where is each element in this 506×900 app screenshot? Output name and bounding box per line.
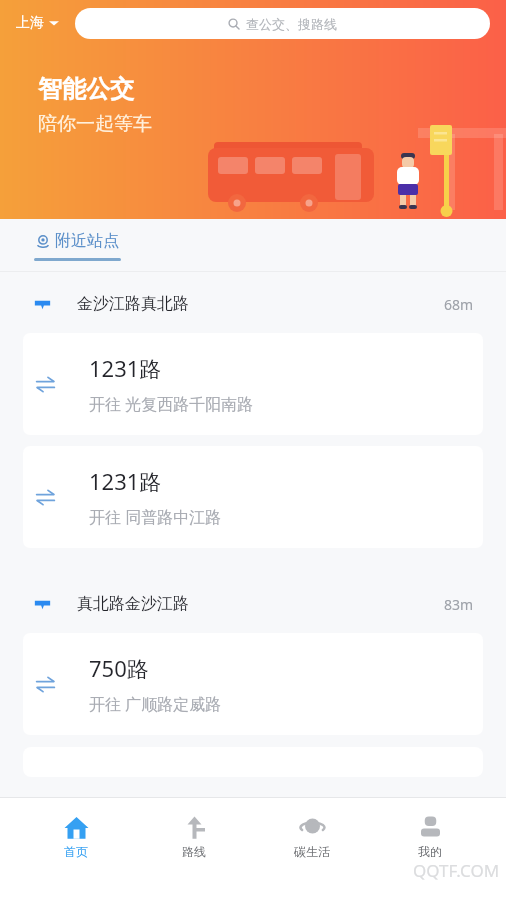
staticText: QQTF.COM xyxy=(413,859,500,882)
staticText: 开往 广顺路定威路 xyxy=(89,693,222,715)
staticText: 查公交、搜路线 xyxy=(246,16,337,32)
button[interactable]: 1231路 xyxy=(23,333,483,435)
other: 我的 xyxy=(418,815,443,840)
staticText: 1231路 xyxy=(89,466,162,496)
other: 碳生活 xyxy=(300,815,325,840)
staticText: 750路 xyxy=(89,653,149,683)
staticText: 首页 xyxy=(64,844,88,859)
button[interactable]: 750路 xyxy=(23,633,483,735)
staticText: 83m xyxy=(444,595,474,614)
button[interactable]: 附近站点 xyxy=(36,231,119,251)
other: 首页 xyxy=(64,815,89,840)
button[interactable]: 我的 xyxy=(388,815,472,859)
staticText: 智能公交 xyxy=(38,74,134,104)
button[interactable]: 查公交、搜路线 xyxy=(75,8,490,39)
button[interactable]: 金沙江路真北路 xyxy=(0,284,506,324)
button[interactable]: 首页 xyxy=(34,815,118,859)
button[interactable]: 1231路 xyxy=(23,446,483,548)
staticText: 附近站点 xyxy=(55,231,119,251)
staticText: 陪你一起等车 xyxy=(38,112,152,136)
staticText: 68m xyxy=(444,295,474,314)
staticText: 开往 同普路中江路 xyxy=(89,506,222,528)
button[interactable]: 上海 xyxy=(16,14,63,32)
staticText: 我的 xyxy=(418,844,442,859)
staticText: 真北路金沙江路 xyxy=(77,594,189,614)
other: 路线 xyxy=(182,815,207,840)
button[interactable]: 真北路金沙江路 xyxy=(0,584,506,624)
staticText: 金沙江路真北路 xyxy=(77,294,189,314)
button[interactable]: 碳生活 xyxy=(270,815,354,859)
staticText: 路线 xyxy=(182,844,206,859)
staticText: 碳生活 xyxy=(294,844,330,859)
button[interactable]: 路线 xyxy=(152,815,236,859)
staticText: 开往 光复西路千阳南路 xyxy=(89,393,254,415)
staticText: 1231路 xyxy=(89,353,162,383)
staticText: 上海 xyxy=(16,14,44,32)
